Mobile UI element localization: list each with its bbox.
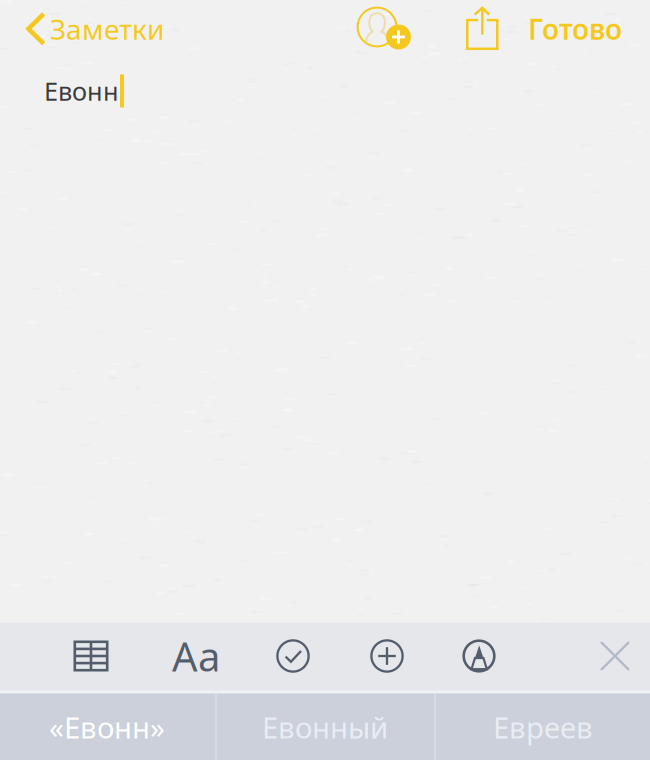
button[interactable]: Checklist (262, 625, 324, 687)
staticText: Евонн (44, 74, 119, 108)
button[interactable]: Markup (448, 625, 510, 687)
button[interactable]: Евреев (436, 693, 650, 760)
staticText: Заметки (50, 10, 164, 48)
button[interactable]: Готово (518, 2, 632, 56)
button[interactable]: Hide keyboard (585, 626, 644, 685)
staticText: Aa (172, 629, 220, 682)
button[interactable]: Add People (348, 0, 419, 58)
staticText: «Евонн» (49, 707, 165, 746)
button[interactable]: Share (455, 0, 507, 60)
button[interactable]: Aa (158, 615, 234, 696)
button[interactable]: Евонный (214, 693, 435, 760)
staticText: Евонный (262, 707, 388, 746)
button[interactable]: «Евонн» (0, 693, 214, 760)
staticText: Готово (528, 10, 622, 48)
button[interactable]: Table (59, 626, 122, 685)
staticText: Евреев (493, 707, 593, 746)
button[interactable]: Заметки (0, 2, 192, 56)
button[interactable]: Insert (356, 625, 418, 687)
